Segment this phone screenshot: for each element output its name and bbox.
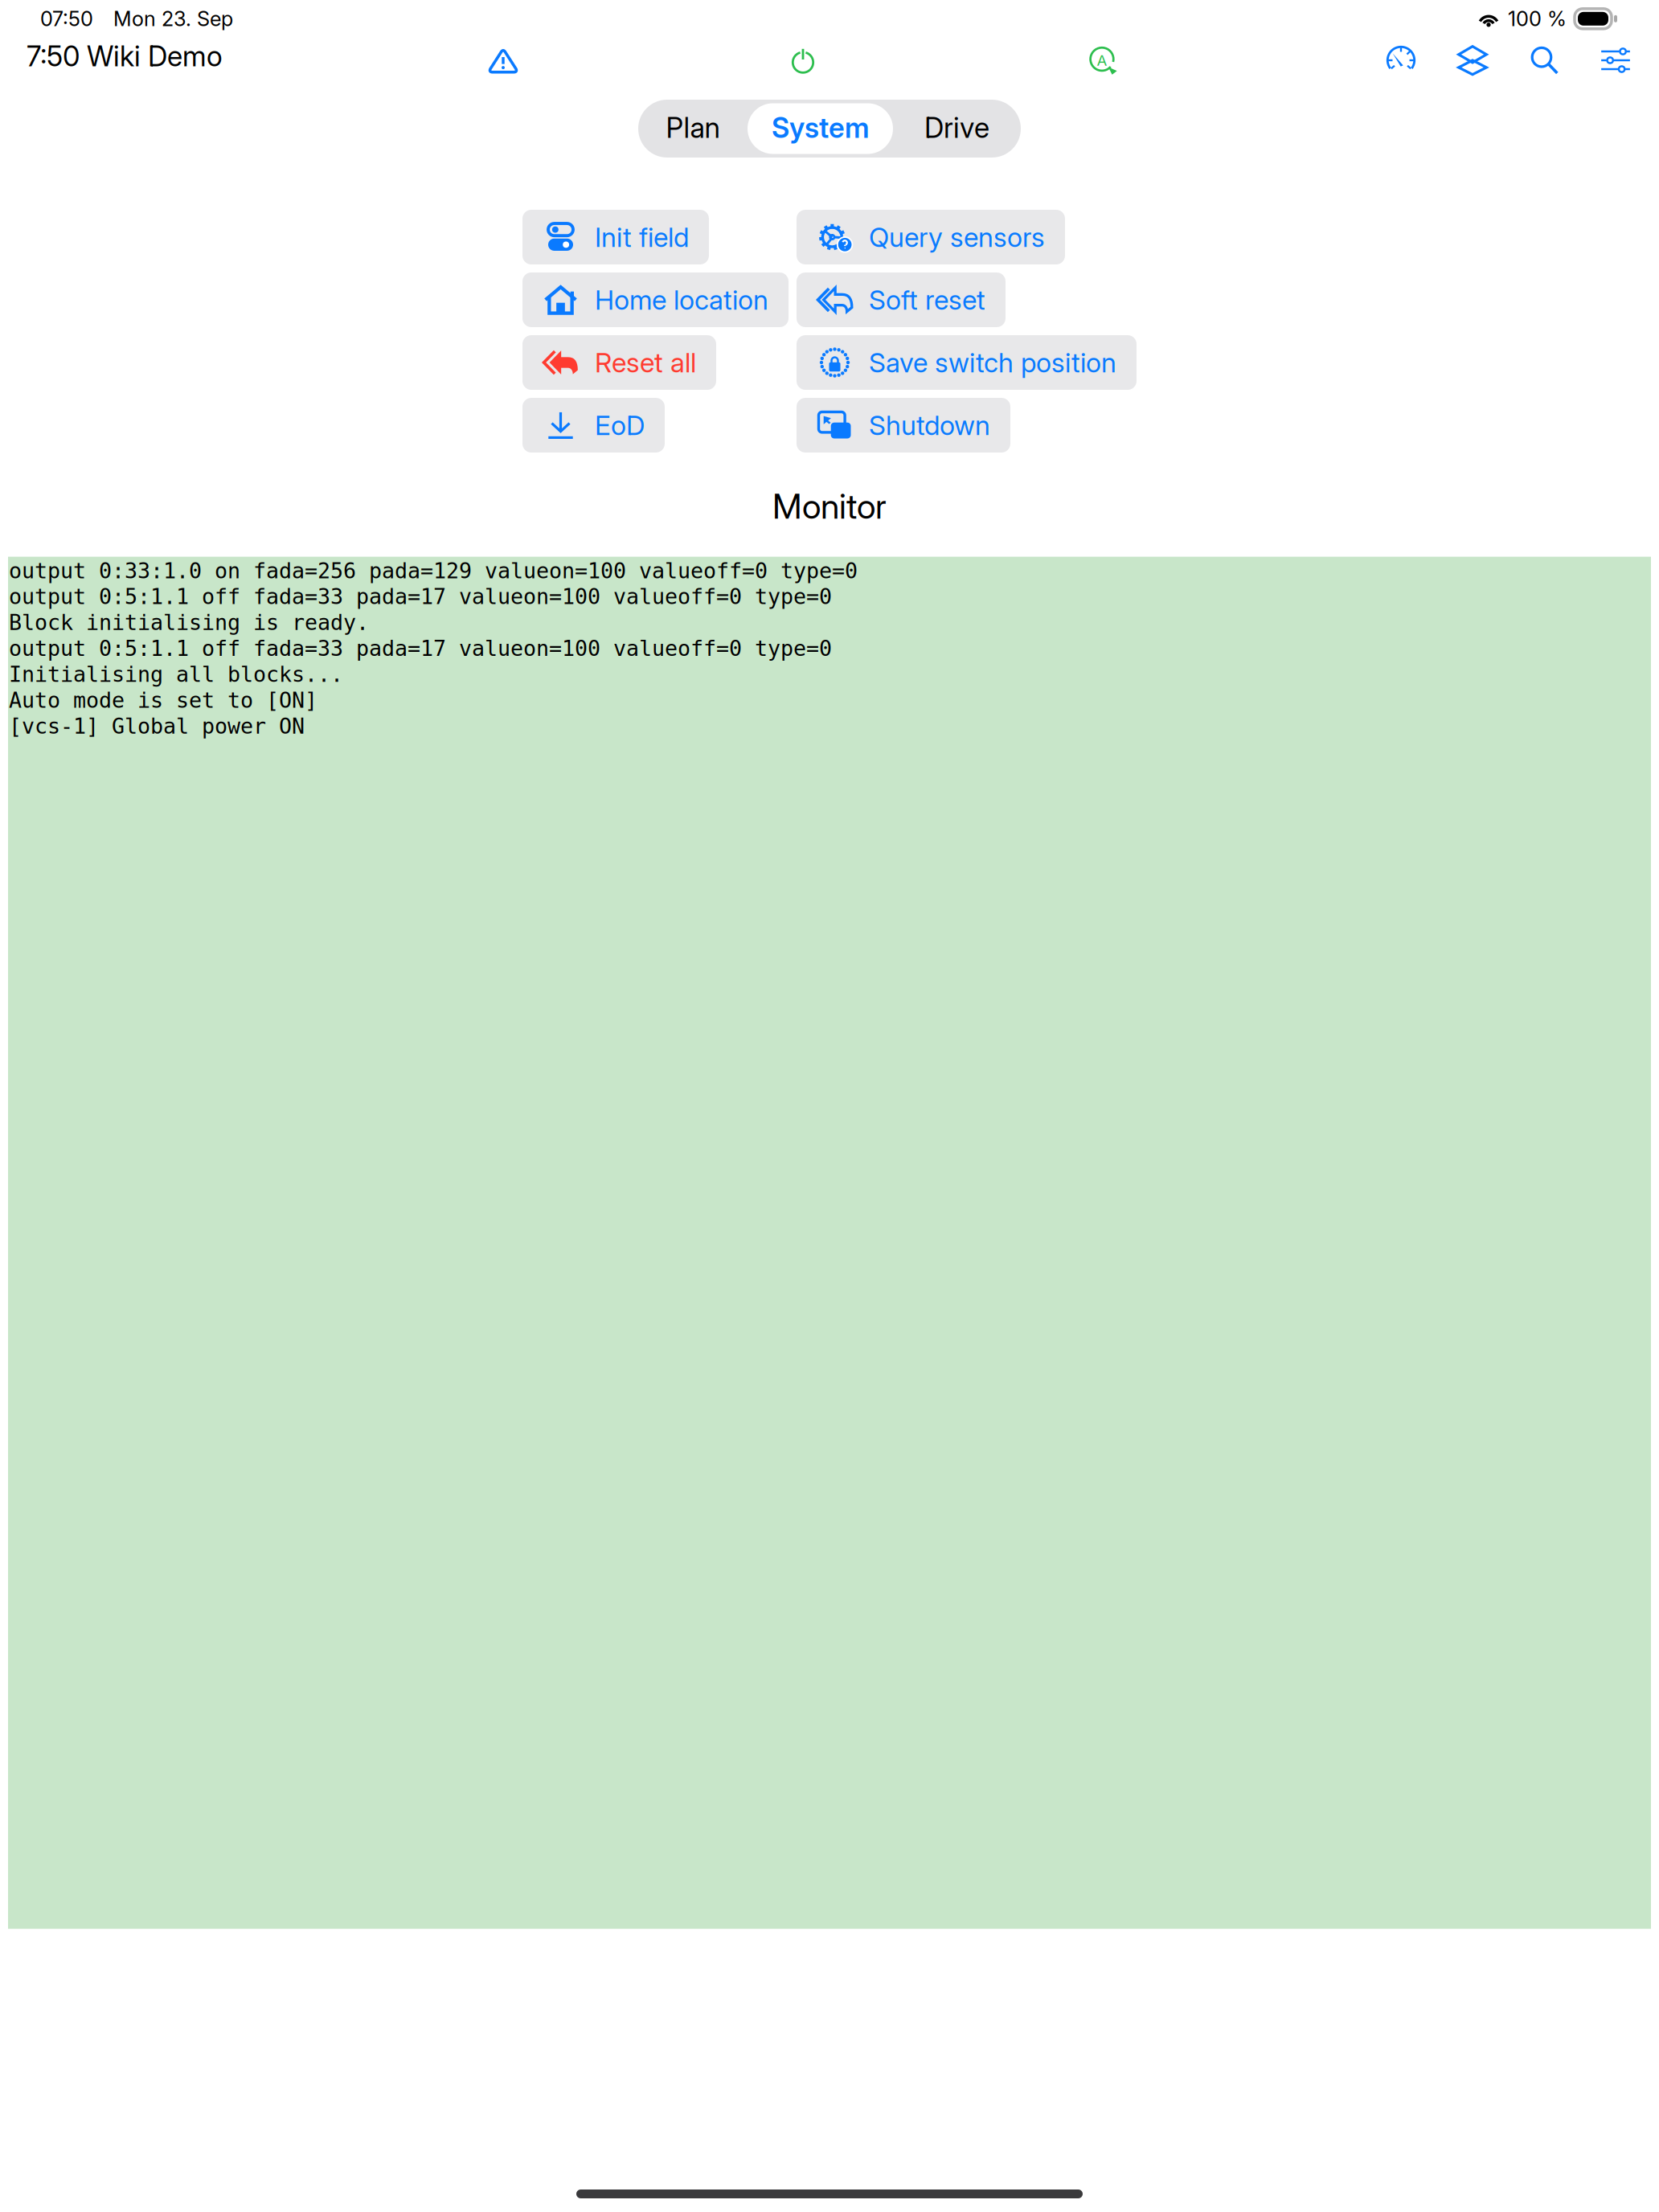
staticText: System (772, 111, 869, 145)
button[interactable]: Speed (1375, 35, 1427, 85)
button[interactable]: Layers (1447, 35, 1498, 85)
staticText: 07:50 (40, 6, 93, 31)
staticText: 100 % (1508, 6, 1567, 31)
staticText: Reset all (595, 346, 696, 379)
staticText: Home location (595, 284, 768, 316)
button[interactable]: Search (1518, 35, 1570, 85)
staticText: Drive (924, 111, 989, 145)
button[interactable]: Save switch position (797, 335, 1137, 390)
button[interactable]: Init field (522, 210, 709, 264)
staticText: output 0:33:1.0 on fada=256 pada=129 val… (9, 558, 858, 583)
button[interactable]: System (748, 103, 893, 154)
button[interactable]: Reset all (522, 335, 716, 390)
button[interactable]: Query sensors (797, 210, 1065, 264)
button[interactable]: Drive (893, 100, 1021, 158)
staticText: [vcs-1] Global power ON (9, 714, 305, 739)
staticText: EoD (595, 409, 645, 441)
staticText: Save switch position (869, 346, 1116, 379)
button[interactable]: Power (777, 35, 829, 85)
staticText: Plan (666, 111, 720, 145)
staticText: output 0:5:1.1 off fada=33 pada=17 value… (9, 584, 832, 609)
staticText: 7:50 Wiki Demo (27, 39, 223, 73)
button[interactable]: Soft reset (797, 272, 1006, 327)
staticText: Block initialising is ready. (9, 610, 369, 635)
button[interactable]: Warnings (477, 35, 529, 85)
button[interactable]: Shutdown (797, 398, 1010, 453)
button[interactable]: Plan (638, 100, 748, 158)
staticText: Init field (595, 221, 689, 253)
staticText: Shutdown (869, 409, 990, 441)
staticText: Mon 23. Sep (113, 6, 233, 31)
staticText: Monitor (772, 485, 887, 527)
staticText: Initialising all blocks... (9, 662, 343, 687)
button[interactable]: Auto mode (1077, 35, 1129, 85)
button[interactable]: Home location (522, 272, 789, 327)
staticText: output 0:5:1.1 off fada=33 pada=17 value… (9, 636, 832, 661)
staticText: Auto mode is set to [ON] (9, 688, 317, 713)
staticText: A (1097, 51, 1107, 69)
staticText: Query sensors (869, 221, 1045, 253)
button[interactable]: EoD (522, 398, 665, 453)
button[interactable]: Settings (1590, 35, 1641, 85)
staticText: Soft reset (869, 284, 985, 316)
